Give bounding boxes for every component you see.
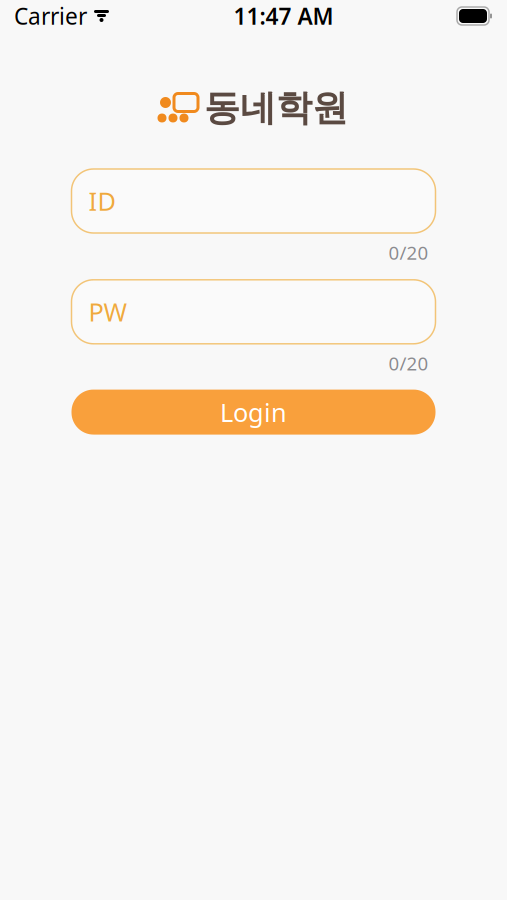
button[interactable]: Login	[71, 390, 435, 435]
staticText: 동네학원	[204, 86, 348, 130]
staticText: Carrier	[14, 1, 87, 31]
button[interactable]: PW	[71, 280, 435, 344]
staticText: 0/20	[388, 351, 428, 376]
button[interactable]: ID	[71, 169, 435, 233]
staticText: PW	[88, 295, 127, 329]
staticText: ID	[88, 184, 115, 218]
staticText: Login	[220, 395, 287, 429]
staticText: 0/20	[388, 240, 428, 265]
staticText: 11:47 AM	[233, 1, 333, 31]
